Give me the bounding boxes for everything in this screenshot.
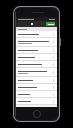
- button[interactable]: [16, 38, 57, 47]
- button[interactable]: [16, 47, 57, 54]
- button[interactable]: [16, 91, 57, 98]
- button[interactable]: Save: [46, 22, 55, 26]
- button[interactable]: Home: [33, 110, 41, 118]
- button[interactable]: [16, 54, 57, 61]
- button[interactable]: [16, 61, 57, 68]
- button[interactable]: [16, 77, 57, 84]
- button[interactable]: [16, 98, 57, 105]
- button[interactable]: [16, 68, 57, 77]
- button[interactable]: [16, 31, 57, 38]
- button[interactable]: [16, 84, 57, 91]
